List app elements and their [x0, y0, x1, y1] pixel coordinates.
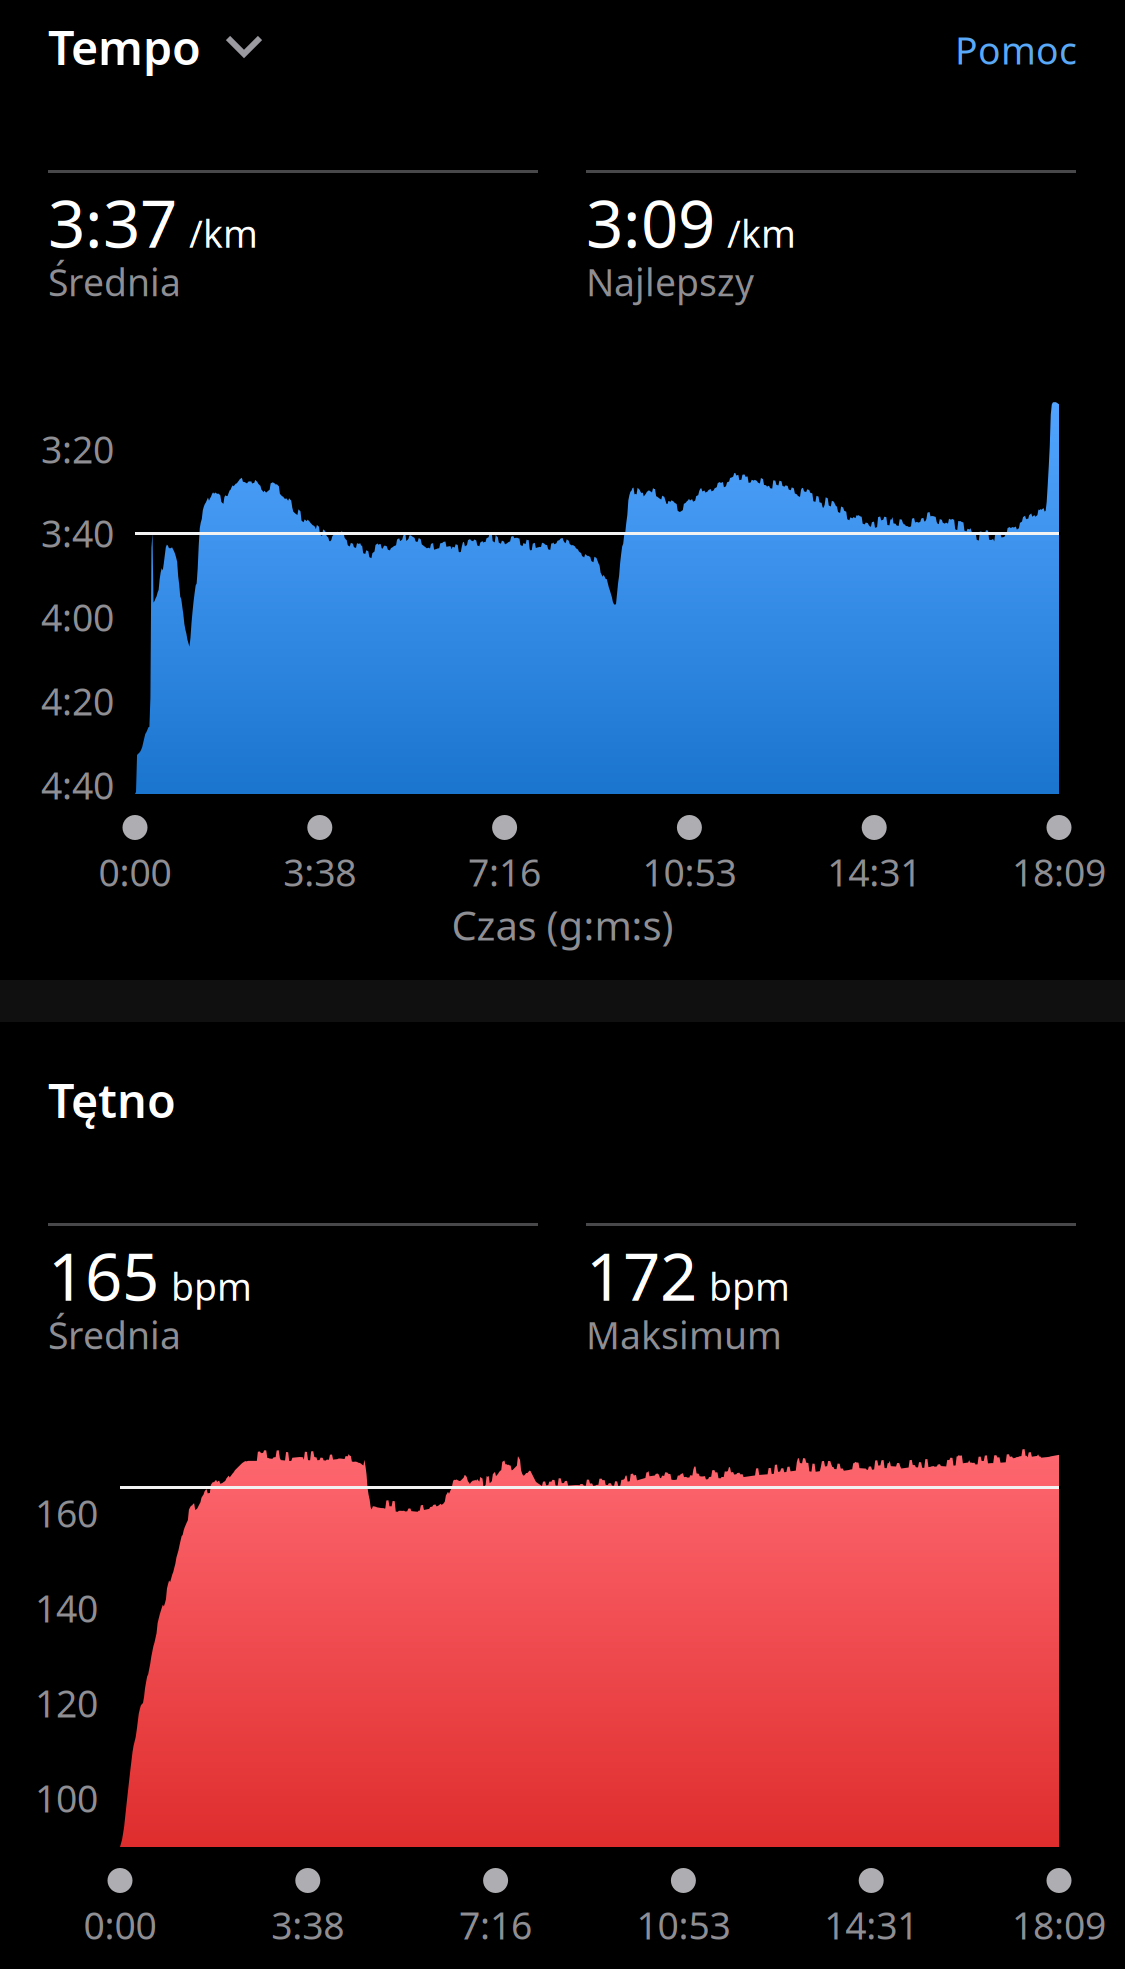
staticText: Średnia: [48, 257, 181, 307]
staticText: 7:16: [468, 847, 541, 897]
staticText: 18:09: [1012, 1900, 1106, 1950]
staticText: Pomoc: [955, 25, 1077, 75]
staticText: 4:00: [41, 592, 114, 642]
staticText: 7:16: [459, 1900, 532, 1950]
staticText: bpm: [709, 1261, 790, 1311]
button[interactable]: Tempo: [48, 16, 263, 78]
staticText: Czas (g:m:s): [451, 898, 673, 951]
staticText: Tętno: [48, 1069, 176, 1131]
staticText: 10:53: [642, 847, 736, 897]
staticText: /km: [727, 208, 796, 258]
staticText: 100: [35, 1773, 98, 1823]
button[interactable]: Pomoc: [955, 25, 1077, 75]
staticText: 4:20: [41, 676, 114, 726]
staticText: 3:09: [586, 179, 715, 266]
staticText: 172: [586, 1232, 697, 1319]
staticText: 120: [35, 1678, 98, 1728]
staticText: 0:00: [83, 1900, 156, 1950]
staticText: Tempo: [48, 16, 201, 78]
staticText: 0:00: [98, 847, 171, 897]
staticText: 3:37: [48, 179, 177, 266]
staticText: 3:38: [283, 847, 356, 897]
staticText: 160: [35, 1488, 98, 1538]
staticText: /km: [189, 208, 258, 258]
staticText: Średnia: [48, 1310, 181, 1360]
staticText: 3:38: [271, 1900, 344, 1950]
staticText: bpm: [171, 1261, 252, 1311]
staticText: Maksimum: [586, 1310, 782, 1360]
staticText: 140: [35, 1583, 98, 1633]
staticText: 10:53: [636, 1900, 730, 1950]
staticText: Najlepszy: [586, 257, 754, 307]
staticText: 14:31: [824, 1900, 918, 1950]
staticText: 18:09: [1012, 847, 1106, 897]
staticText: 14:31: [827, 847, 921, 897]
staticText: 3:20: [41, 424, 114, 474]
staticText: 3:40: [41, 508, 114, 558]
staticText: 4:40: [41, 760, 114, 810]
staticText: 165: [48, 1232, 159, 1319]
